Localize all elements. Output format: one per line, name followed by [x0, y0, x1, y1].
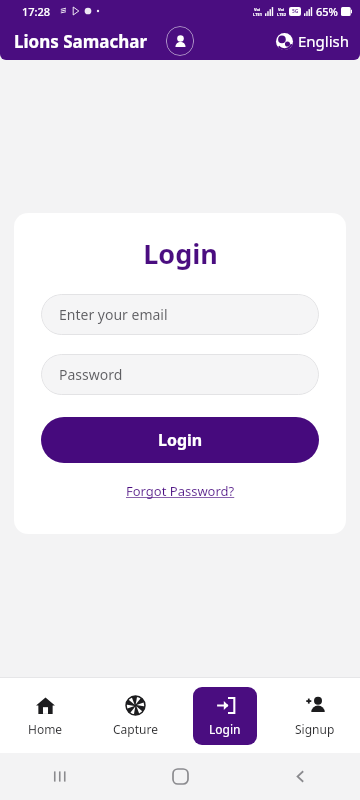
other: Back — [293, 769, 308, 784]
staticText: Home — [28, 721, 63, 737]
staticText: Voi — [278, 7, 285, 12]
staticText: 65% — [316, 4, 338, 19]
staticText: Password — [59, 365, 123, 384]
button[interactable]: Login — [193, 687, 257, 745]
staticText: LTE1 — [253, 12, 262, 17]
other: Recents — [52, 768, 69, 785]
staticText: 17:28 — [22, 4, 51, 19]
staticText: Forgot Password? — [126, 482, 235, 500]
button[interactable]: Home — [18, 689, 73, 743]
button[interactable]: Login — [41, 417, 319, 463]
button[interactable]: English — [276, 31, 350, 51]
staticText: Login — [158, 429, 203, 451]
staticText: 5G — [292, 8, 299, 15]
button[interactable]: Signup — [285, 689, 345, 743]
staticText: Login — [143, 235, 218, 272]
staticText: Login — [209, 721, 241, 737]
button[interactable]: Password — [41, 354, 319, 395]
button[interactable]: Account — [166, 26, 194, 56]
button[interactable]: Forgot Password? — [124, 480, 237, 502]
button[interactable]: Capture — [103, 689, 168, 743]
staticText: Voi — [254, 7, 261, 12]
staticText: LTE2 — [277, 12, 286, 17]
staticText: Enter your email — [59, 305, 168, 324]
staticText: English — [298, 31, 350, 51]
staticText: Capture — [113, 721, 158, 737]
button[interactable]: Enter your email — [41, 294, 319, 335]
staticText: Lions Samachar — [14, 30, 148, 53]
staticText: Signup — [295, 721, 335, 737]
other: Home — [173, 769, 188, 784]
